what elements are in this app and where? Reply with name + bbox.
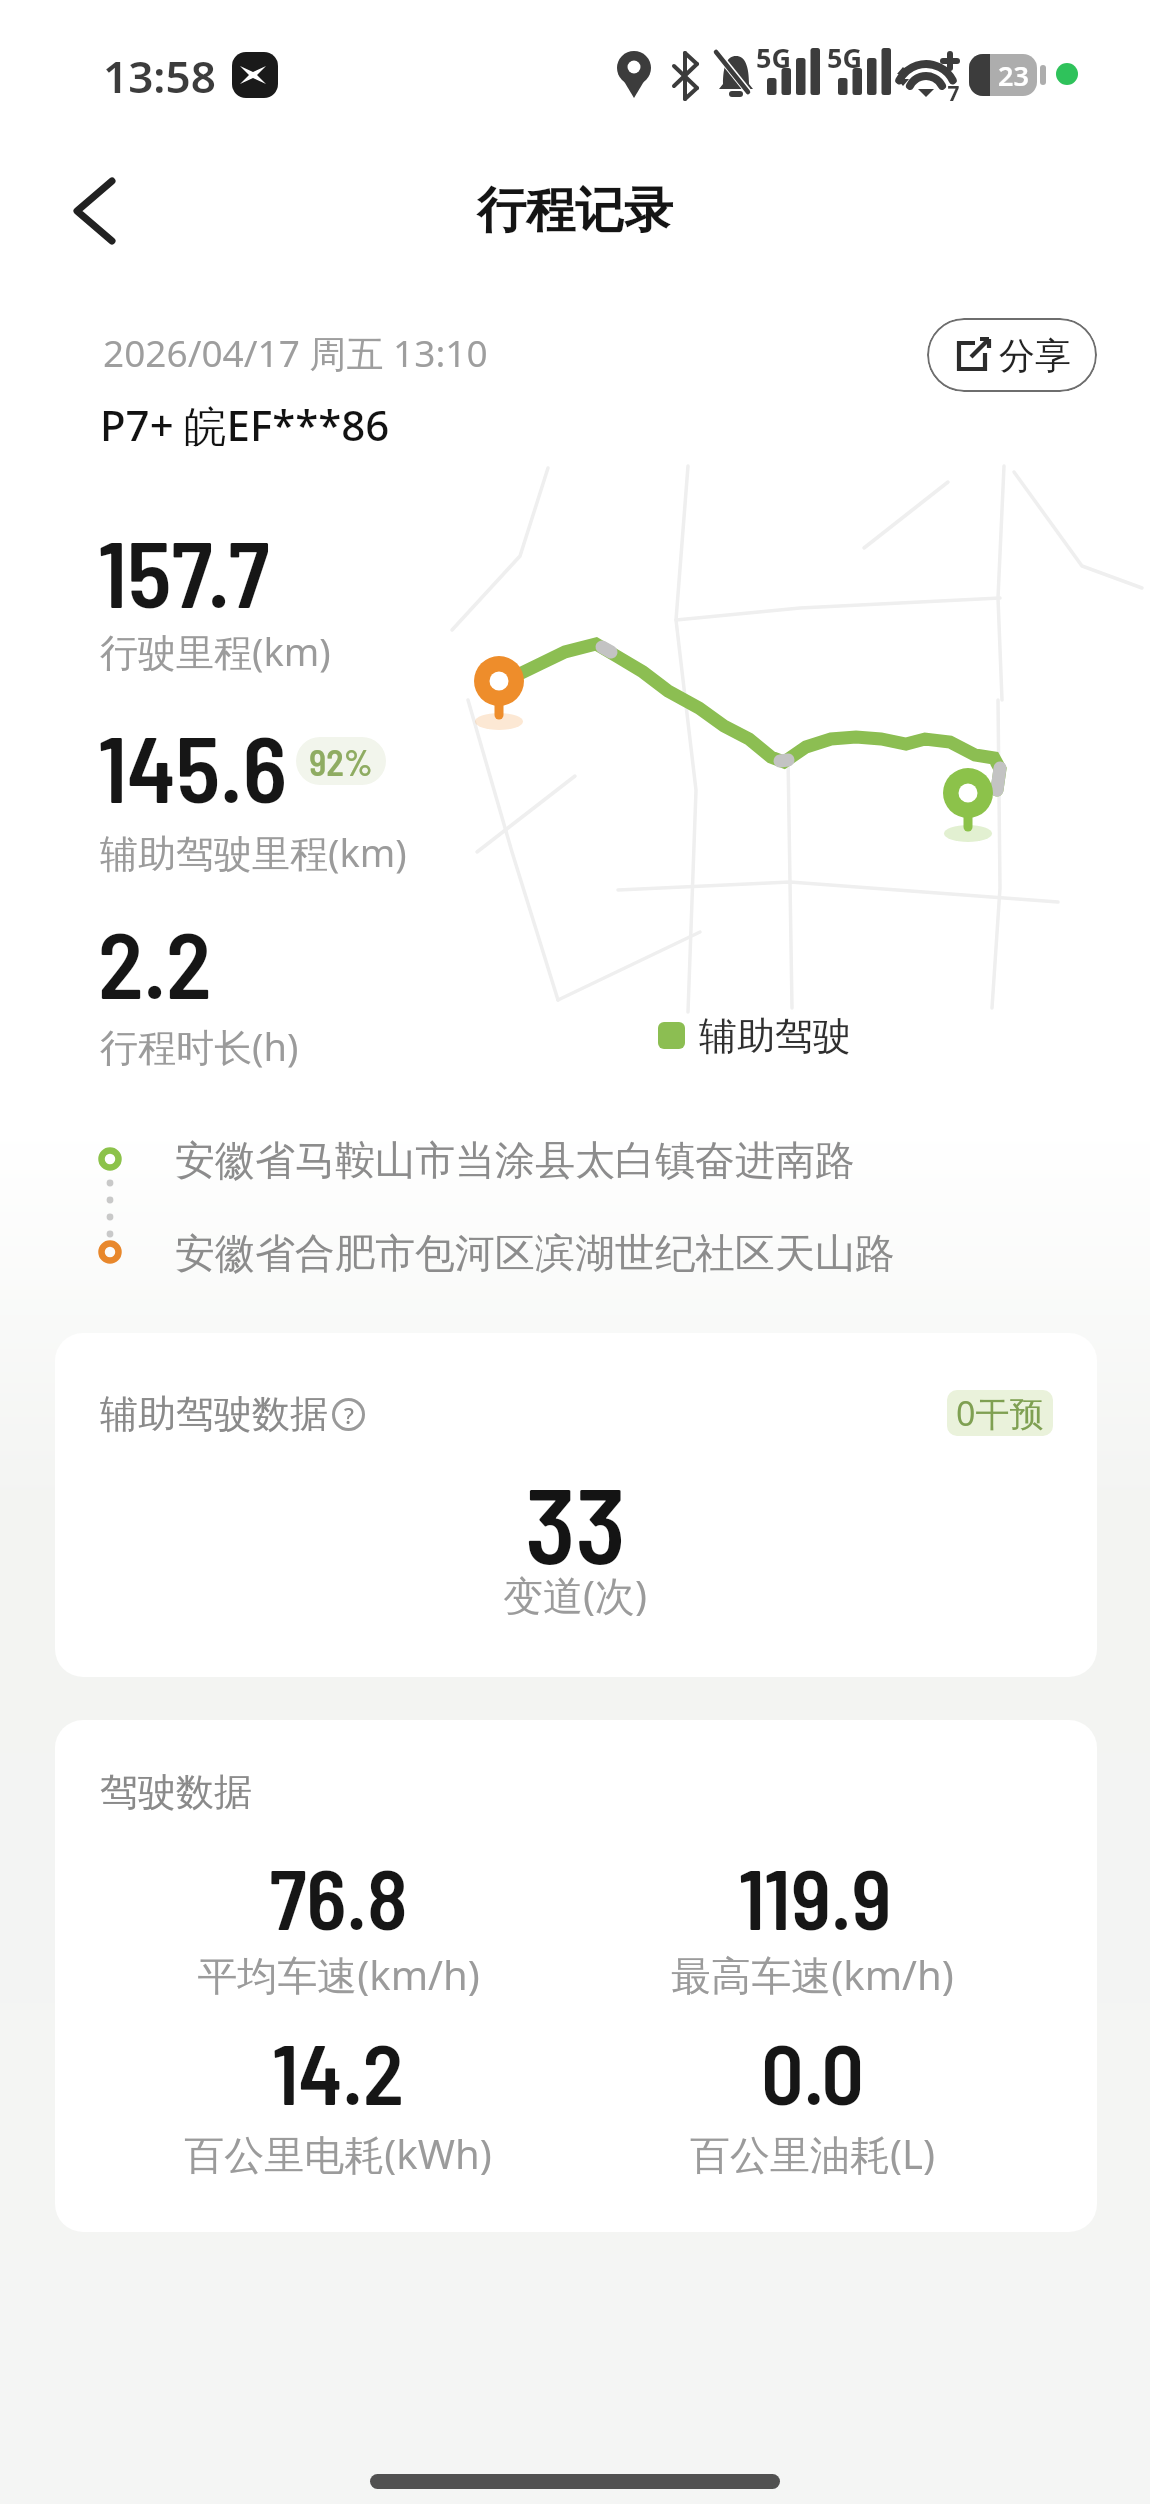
staticText: 0.0 xyxy=(761,2021,864,2122)
button[interactable]: 分享 xyxy=(927,318,1097,392)
staticText: 145.6 xyxy=(98,710,288,822)
staticText: 33 xyxy=(525,1459,626,1579)
button[interactable] xyxy=(60,175,136,251)
staticText: 辅助驾驶数据 xyxy=(100,1390,328,1438)
staticText: 安徽省合肥市包河区滨湖世纪社区天山路 xyxy=(175,1228,895,1278)
staticText: 百公里电耗(kWh) xyxy=(184,2126,492,2181)
staticText: 行程记录 xyxy=(477,180,673,242)
staticText: 安徽省马鞍山市当涂县太白镇奋进南路 xyxy=(175,1135,855,1185)
staticText: 变道(次) xyxy=(503,1567,647,1622)
staticText: 辅助驾驶里程(km) xyxy=(100,826,407,878)
button[interactable]: ? xyxy=(332,1398,365,1431)
staticText: 平均车速(km/h) xyxy=(197,1947,480,2002)
staticText: 76.8 xyxy=(269,1846,408,1947)
staticText: 最高车速(km/h) xyxy=(671,1947,954,2002)
staticText: 13:58 xyxy=(103,46,216,106)
staticText: 0干预 xyxy=(956,1390,1044,1436)
staticText: 驾驶数据 xyxy=(100,1768,252,1816)
staticText: 辅助驾驶 xyxy=(699,1012,851,1060)
staticText: 14.2 xyxy=(272,2021,404,2122)
staticText: 5G xyxy=(827,39,862,76)
staticText: 2.2 xyxy=(98,906,212,1018)
staticText: ? xyxy=(344,1400,354,1430)
staticText: 119.9 xyxy=(738,1846,892,1947)
staticText: 行程时长(h) xyxy=(100,1020,299,1072)
staticText: 百公里油耗(L) xyxy=(690,2126,935,2181)
staticText: 行驶里程(km) xyxy=(100,625,331,677)
staticText: 92% xyxy=(309,740,373,783)
staticText: 157.7 xyxy=(98,515,270,627)
staticText: P7+ 皖EF***86 xyxy=(100,396,390,453)
staticText: 7 xyxy=(947,79,960,108)
staticText: 2026/04/17 周五 13:10 xyxy=(103,327,488,378)
staticText: 分享 xyxy=(999,333,1071,378)
staticText: 23 xyxy=(998,57,1029,94)
staticText: 5G xyxy=(756,39,791,76)
